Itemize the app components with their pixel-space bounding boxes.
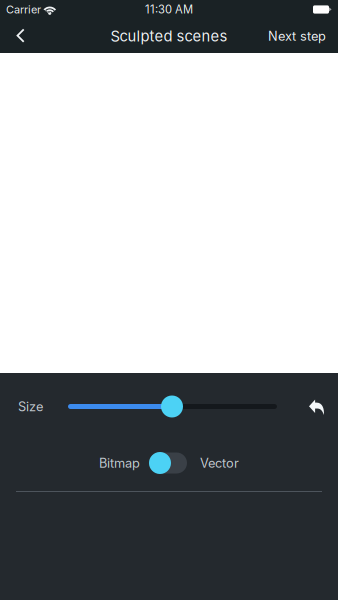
- staticText: 11:30 AM: [145, 3, 193, 16]
- button[interactable]: Bitmap or Vector mode: [149, 452, 187, 474]
- staticText: Size: [18, 399, 43, 414]
- staticText: Bitmap: [99, 455, 140, 471]
- staticText: Sculpted scenes: [110, 27, 227, 45]
- button[interactable]: Next step: [258, 19, 338, 53]
- button[interactable]: Back: [0, 19, 42, 53]
- staticText: Next step: [268, 28, 326, 44]
- staticText: Vector: [200, 455, 239, 471]
- staticText: Carrier: [6, 3, 41, 16]
- button[interactable]: Undo: [302, 394, 331, 418]
